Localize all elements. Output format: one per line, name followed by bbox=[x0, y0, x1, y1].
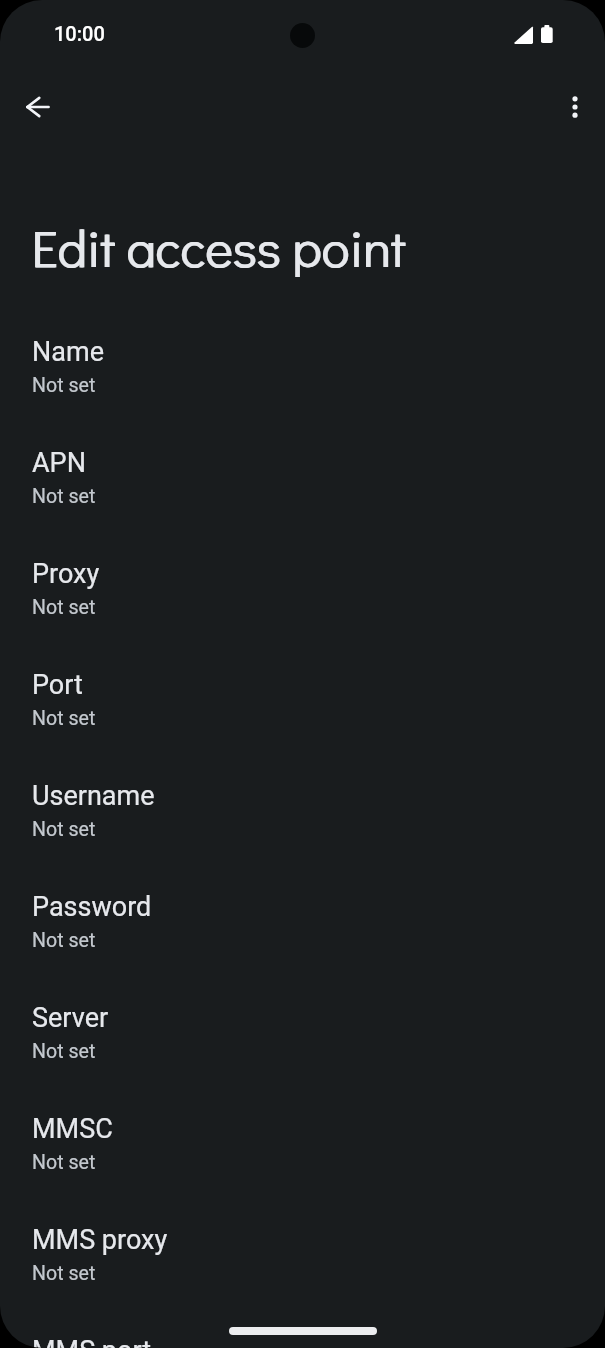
button[interactable]: MMS proxy bbox=[0, 1224, 605, 1335]
staticText: Not set bbox=[32, 374, 96, 397]
staticText: Not set bbox=[32, 929, 96, 952]
staticText: MMS proxy bbox=[32, 1224, 168, 1256]
staticText: 10:00 bbox=[54, 22, 105, 45]
staticText: Username bbox=[32, 780, 155, 812]
staticText: Name bbox=[32, 336, 104, 368]
staticText: Not set bbox=[32, 818, 96, 841]
button[interactable]: Server bbox=[0, 1002, 605, 1113]
staticText: Server bbox=[32, 1002, 109, 1034]
button[interactable]: Name bbox=[0, 336, 605, 447]
staticText: Not set bbox=[32, 1040, 96, 1063]
staticText: Password bbox=[32, 891, 152, 923]
button[interactable]: APN bbox=[0, 447, 605, 558]
staticText: MMS port bbox=[32, 1335, 152, 1348]
staticText: Not set bbox=[32, 485, 96, 508]
staticText: Proxy bbox=[32, 558, 100, 590]
button[interactable]: Proxy bbox=[0, 558, 605, 669]
staticText: APN bbox=[32, 447, 86, 479]
button[interactable]: Password bbox=[0, 891, 605, 1002]
staticText: Not set bbox=[32, 1151, 96, 1174]
staticText: Not set bbox=[32, 596, 96, 619]
button[interactable]: Port bbox=[0, 669, 605, 780]
staticText: Port bbox=[32, 669, 83, 701]
staticText: Not set bbox=[32, 707, 96, 730]
button[interactable]: More options bbox=[547, 79, 603, 135]
staticText: MMSC bbox=[32, 1113, 113, 1145]
staticText: Not set bbox=[32, 1262, 96, 1285]
button[interactable]: MMS port bbox=[0, 1335, 605, 1348]
staticText: Edit access point bbox=[31, 213, 406, 281]
button[interactable]: MMSC bbox=[0, 1113, 605, 1224]
button[interactable]: Username bbox=[0, 780, 605, 891]
button[interactable]: Navigate up bbox=[10, 79, 66, 135]
